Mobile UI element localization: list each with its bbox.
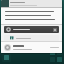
button[interactable]: Shortcut (57, 50, 62, 55)
button[interactable]: Menu (1, 0, 9, 7)
button[interactable] (1, 42, 62, 53)
button[interactable]: Close (4, 26, 59, 33)
button[interactable]: Widget (2, 53, 11, 62)
button[interactable] (4, 35, 59, 41)
button[interactable]: Shortcut (50, 50, 55, 55)
button[interactable]: Close (53, 28, 57, 32)
